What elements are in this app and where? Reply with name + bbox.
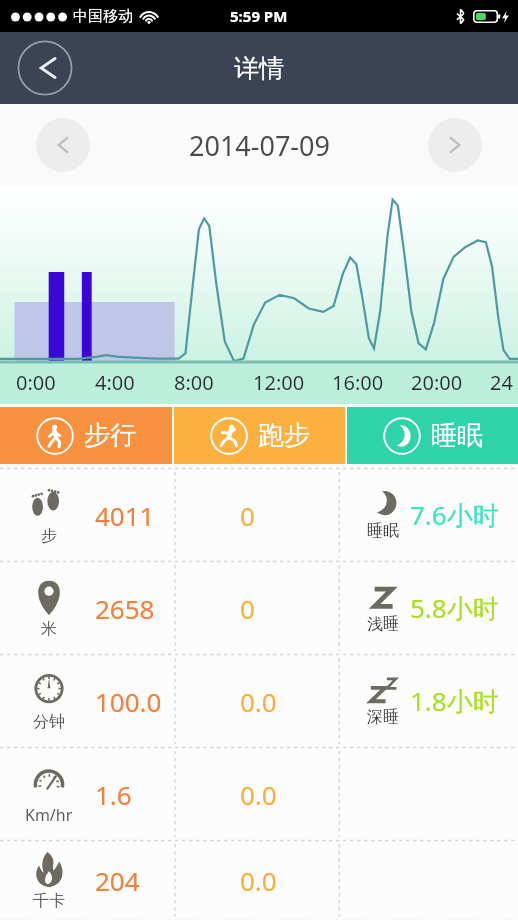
staticText: 5:59 PM — [230, 6, 288, 26]
staticText: 0 — [240, 591, 255, 626]
staticText: 5.8小时 — [410, 590, 499, 626]
staticText: 8:00 — [174, 369, 214, 396]
staticText: 24 — [490, 369, 513, 396]
staticText: 0 — [240, 498, 255, 533]
staticText: 7.6小时 — [410, 497, 499, 533]
staticText: 4011 — [95, 498, 155, 533]
staticText: 16:00 — [332, 369, 384, 396]
staticText: Km/hr — [25, 804, 73, 826]
staticText: 204 — [95, 863, 140, 898]
staticText: 睡眠 — [367, 521, 399, 541]
staticText: 2658 — [95, 591, 155, 626]
button[interactable]: 步行 — [0, 407, 172, 464]
staticText: 2014-07-09 — [189, 127, 330, 164]
button[interactable]: Km/hr — [0, 748, 518, 840]
staticText: 中国移动 — [73, 7, 133, 26]
button[interactable]: 分钟 — [0, 655, 518, 747]
staticText: 步 — [41, 526, 57, 546]
button[interactable]: 米 — [0, 562, 518, 654]
button[interactable]: 睡眠 — [347, 407, 518, 464]
staticText: 千卡 — [33, 891, 65, 911]
staticText: 0:00 — [16, 369, 56, 396]
staticText: 步行 — [84, 419, 136, 452]
staticText: 浅睡 — [367, 614, 399, 634]
button[interactable]: Next day — [428, 118, 482, 172]
staticText: 4:00 — [95, 369, 135, 396]
staticText: 睡眠 — [431, 419, 483, 452]
staticText: 20:00 — [411, 369, 463, 396]
button[interactable]: 跑步 — [174, 407, 345, 464]
staticText: 12:00 — [253, 369, 305, 396]
staticText: 0.0 — [240, 777, 277, 812]
staticText: 100.0 — [95, 684, 162, 719]
staticText: 0.0 — [240, 684, 277, 719]
button[interactable]: 千卡 — [0, 841, 518, 920]
button[interactable]: 步 — [0, 469, 518, 561]
staticText: 深睡 — [367, 707, 399, 727]
staticText: 详情 — [234, 53, 284, 84]
staticText: 0.0 — [240, 863, 277, 898]
staticText: 分钟 — [33, 712, 65, 732]
staticText: 跑步 — [258, 419, 310, 452]
button[interactable]: Back — [17, 40, 73, 96]
staticText: 1.8小时 — [410, 683, 499, 719]
staticText: 米 — [41, 619, 57, 639]
button[interactable]: Previous day — [36, 118, 90, 172]
staticText: 1.6 — [95, 777, 132, 812]
